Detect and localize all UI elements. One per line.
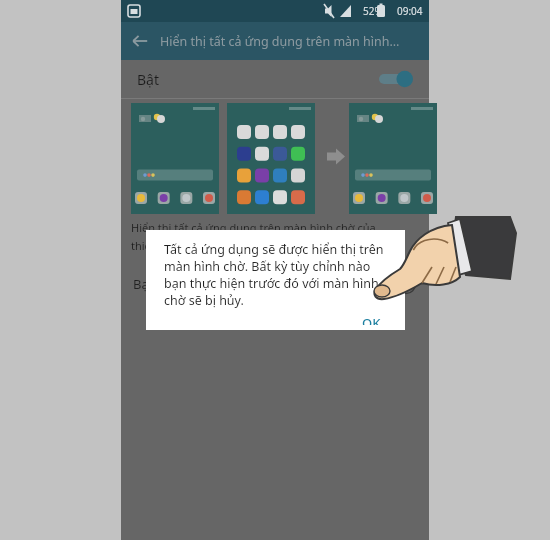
staticText: 09:04 — [397, 4, 423, 18]
staticText: Tất cả ứng dụng sẽ được hiển thị trên mà… — [164, 241, 391, 309]
button[interactable]: Not helpful — [395, 273, 417, 295]
staticText: thiết bị. — [131, 238, 171, 253]
button[interactable]: OK — [352, 309, 391, 330]
button[interactable]: Back — [121, 22, 159, 60]
staticText: OK — [362, 314, 381, 325]
staticText: Hiển thị tất cả ứng dụng trên màn hình… — [160, 33, 400, 50]
staticText: 52% — [363, 4, 383, 18]
button[interactable]: Bật — [121, 60, 429, 98]
staticText: Hiển thị tất cả ứng dụng trên màn hình c… — [131, 220, 376, 235]
staticText: Bật — [137, 70, 160, 89]
staticText: Bạn có thấy hữu ích không? — [133, 275, 302, 293]
button[interactable]: Helpful — [365, 273, 387, 295]
